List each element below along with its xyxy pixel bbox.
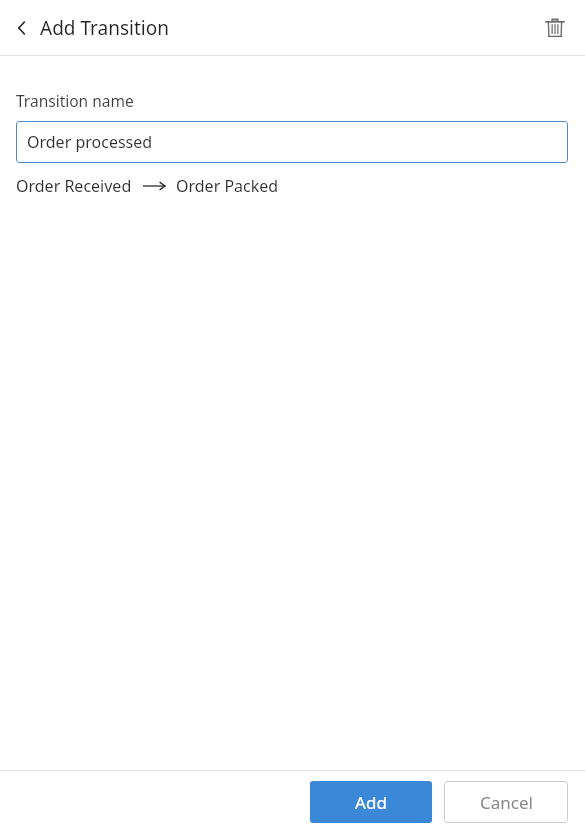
staticText: Order Received bbox=[16, 175, 132, 197]
button[interactable]: Add bbox=[310, 781, 432, 823]
staticText: Transition name bbox=[16, 90, 134, 111]
button[interactable]: Cancel bbox=[444, 781, 568, 823]
button[interactable]: Delete bbox=[536, 9, 574, 47]
staticText: Add bbox=[355, 791, 387, 814]
button[interactable]: Back bbox=[4, 10, 40, 46]
staticText: Add Transition bbox=[40, 15, 169, 41]
button[interactable]: Order processed bbox=[16, 121, 568, 163]
staticText: Cancel bbox=[480, 791, 533, 814]
staticText: Order processed bbox=[27, 131, 153, 153]
staticText: Order Packed bbox=[176, 175, 279, 197]
